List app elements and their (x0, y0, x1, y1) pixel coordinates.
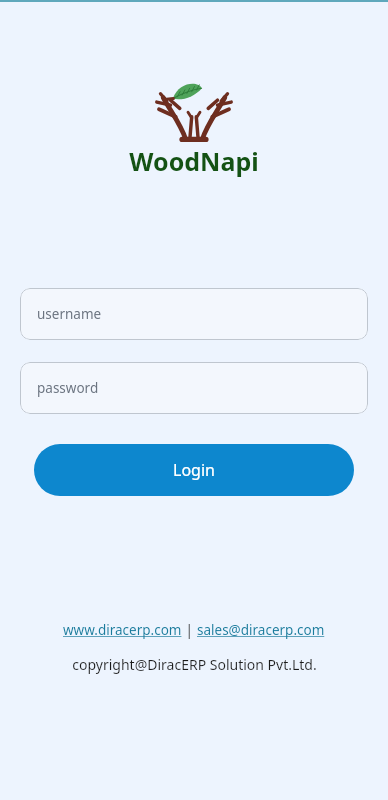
staticText: sales@diracerp.com (197, 621, 325, 639)
staticText: | (182, 621, 197, 639)
staticText: WoodNapi (129, 144, 259, 178)
staticText: Login (173, 459, 215, 481)
staticText: password (37, 379, 99, 397)
other: WoodNapi logo (148, 82, 240, 140)
staticText: www.diracerp.com (63, 621, 182, 639)
button[interactable]: Login (34, 444, 354, 496)
button[interactable]: password (20, 362, 368, 414)
button[interactable]: username (20, 288, 368, 340)
button[interactable]: sales@diracerp.com (197, 621, 325, 639)
staticText: copyright@DiracERP Solution Pvt.Ltd. (72, 655, 317, 674)
staticText: username (37, 305, 102, 323)
button[interactable]: www.diracerp.com (63, 621, 182, 639)
